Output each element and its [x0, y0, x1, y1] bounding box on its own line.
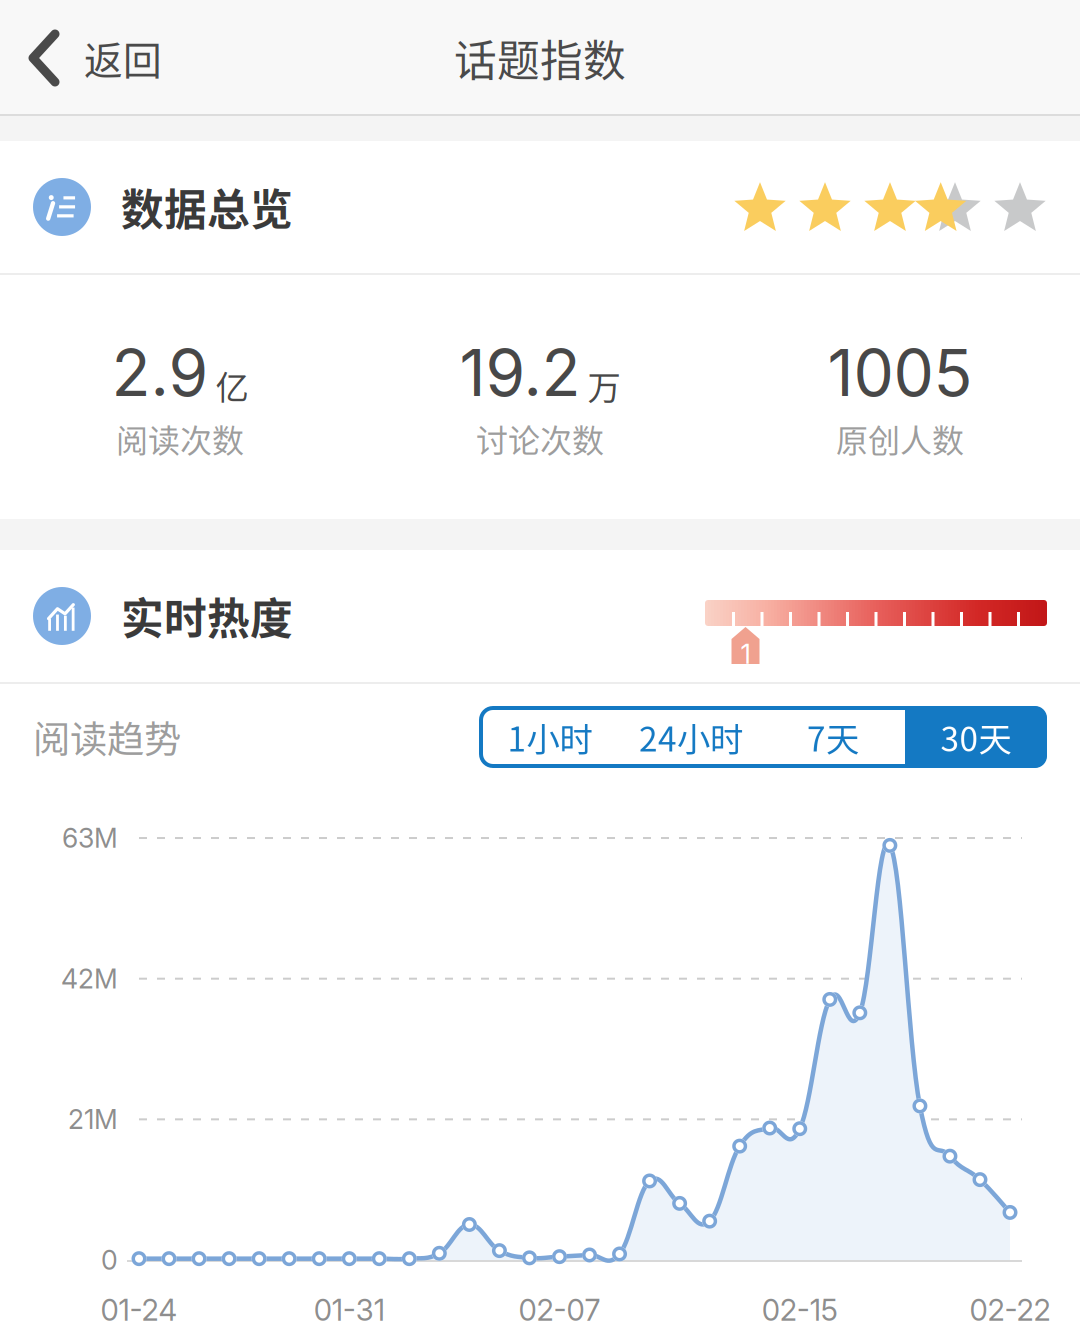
button[interactable]: 24小时 — [621, 706, 761, 768]
button[interactable]: 返回 — [0, 0, 300, 116]
staticText: 0 — [101, 1244, 118, 1276]
staticText: 02-15 — [762, 1292, 838, 1328]
staticText: 1005 — [827, 334, 972, 411]
staticText: 21M — [68, 1103, 118, 1135]
staticText: 24小时 — [639, 713, 743, 761]
staticText: 02-07 — [518, 1292, 600, 1328]
staticText: 阅读趋势 — [33, 710, 181, 764]
staticText: 7天 — [807, 713, 859, 761]
button[interactable]: 1小时 — [479, 706, 621, 768]
staticText: 1 — [740, 638, 750, 670]
staticText: 讨论次数 — [476, 415, 604, 462]
staticText: 63M — [62, 822, 118, 854]
staticText: 01-24 — [100, 1292, 177, 1328]
staticText: 2.9 — [111, 334, 208, 411]
staticText: 02-22 — [969, 1292, 1050, 1328]
staticText: 返回 — [84, 30, 162, 86]
button[interactable]: 30天 — [905, 706, 1047, 768]
staticText: 话题指数 — [454, 27, 626, 89]
staticText: 万 — [587, 361, 620, 409]
staticText: 1小时 — [507, 713, 592, 761]
staticText: 亿 — [215, 361, 248, 409]
staticText: 30天 — [940, 713, 1011, 761]
staticText: 42M — [61, 963, 118, 995]
staticText: 01-31 — [314, 1292, 385, 1328]
staticText: 阅读次数 — [116, 415, 244, 462]
staticText: 数据总览 — [121, 176, 293, 238]
staticText: 原创人数 — [836, 415, 964, 462]
staticText: 19.2 — [459, 334, 580, 411]
button[interactable]: 7天 — [761, 706, 905, 768]
staticText: 实时热度 — [121, 585, 293, 647]
